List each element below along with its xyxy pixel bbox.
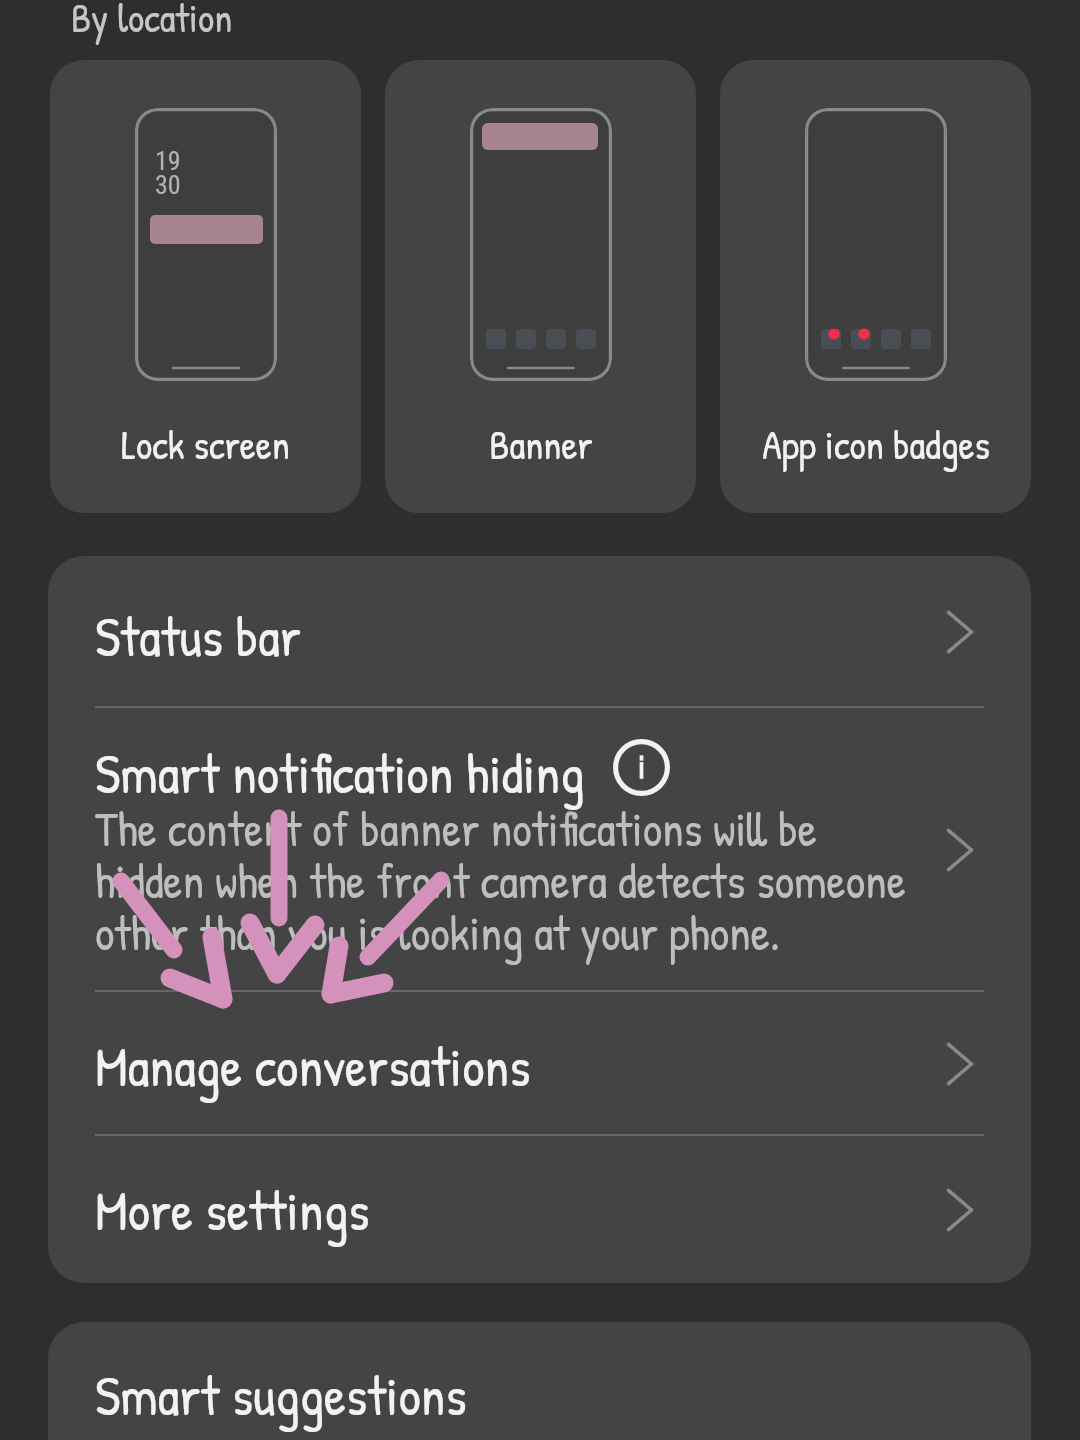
staticText: Status bar — [95, 599, 301, 673]
button[interactable]: Banner — [385, 60, 696, 513]
button[interactable]: 19 — [50, 60, 361, 513]
staticText: 30 — [155, 170, 181, 200]
staticText: Smart suggestions — [95, 1358, 467, 1432]
button[interactable]: Manage conversations — [48, 992, 1031, 1135]
button[interactable]: Status bar — [48, 556, 1031, 707]
button[interactable]: More settings — [48, 1136, 1031, 1283]
staticText: Manage conversations — [95, 1029, 531, 1103]
button[interactable]: Smart notification hiding — [48, 708, 1031, 991]
staticText: By location — [71, 0, 233, 44]
staticText: 19 — [155, 146, 181, 176]
staticText: App icon badges — [762, 417, 990, 471]
other: Open — [937, 1041, 983, 1087]
staticText: More settings — [95, 1173, 370, 1247]
other: Open — [937, 609, 983, 655]
button[interactable]: App icon badges — [720, 60, 1031, 513]
other: Open — [937, 1187, 983, 1233]
staticText: The content of banner notifications will… — [95, 796, 920, 965]
staticText: Banner — [489, 417, 593, 471]
staticText: Lock screen — [121, 417, 290, 471]
button[interactable]: More information — [613, 739, 670, 796]
staticText: Smart notification hiding — [95, 736, 585, 810]
other: Open — [937, 827, 983, 873]
button[interactable]: Smart suggestions — [48, 1322, 1031, 1440]
